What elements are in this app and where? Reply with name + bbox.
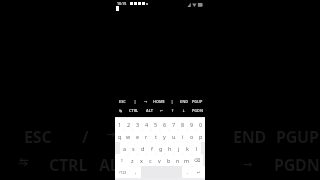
button[interactable]: m bbox=[182, 154, 191, 166]
button[interactable]: c bbox=[146, 154, 155, 166]
button[interactable]: / bbox=[82, 126, 89, 148]
button[interactable]: ALT bbox=[99, 154, 128, 176]
staticText: CTRL bbox=[129, 108, 139, 113]
button[interactable]: r bbox=[142, 130, 151, 142]
button[interactable]: ↑ bbox=[167, 105, 178, 115]
staticText: v bbox=[158, 157, 161, 164]
staticText: j bbox=[178, 145, 180, 152]
button[interactable]: PGUP bbox=[190, 96, 205, 106]
button[interactable]: y bbox=[160, 130, 169, 142]
button[interactable]: HOME bbox=[151, 96, 167, 106]
staticText: b bbox=[167, 157, 171, 164]
staticText: PGUP bbox=[192, 99, 203, 104]
button[interactable]: p bbox=[196, 130, 205, 142]
staticText: n bbox=[176, 157, 180, 164]
button[interactable]: a bbox=[120, 142, 129, 154]
staticText: ESC bbox=[119, 99, 126, 104]
staticText: ↓ bbox=[182, 108, 186, 112]
button[interactable]: . bbox=[182, 166, 193, 178]
button[interactable]: v bbox=[155, 154, 164, 166]
button[interactable]: 6 bbox=[160, 118, 169, 130]
staticText: q bbox=[118, 133, 122, 140]
staticText: / bbox=[82, 126, 89, 148]
staticText: END bbox=[233, 126, 267, 148]
button[interactable]: n bbox=[173, 154, 182, 166]
button[interactable]: ↓ bbox=[178, 105, 189, 115]
button[interactable]: j bbox=[174, 142, 183, 154]
staticText: | bbox=[171, 99, 174, 104]
staticText: PGDN bbox=[192, 108, 203, 113]
button[interactable]: Enter bbox=[193, 166, 205, 178]
button[interactable]: g bbox=[156, 142, 165, 154]
button[interactable]: o bbox=[187, 130, 196, 142]
button[interactable]: l bbox=[192, 142, 201, 154]
button[interactable]: , bbox=[130, 166, 141, 178]
button[interactable]: b bbox=[164, 154, 173, 166]
button[interactable]: s bbox=[129, 142, 138, 154]
button[interactable]: Backspace bbox=[191, 154, 203, 166]
button[interactable]: w bbox=[124, 130, 133, 142]
button[interactable]: 2 bbox=[124, 118, 133, 130]
button[interactable]: ALT bbox=[142, 105, 156, 115]
button[interactable]: | bbox=[167, 96, 177, 106]
button[interactable]: | bbox=[130, 96, 140, 106]
staticText: . bbox=[187, 169, 189, 175]
button[interactable]: → bbox=[106, 128, 116, 141]
staticText: ← bbox=[160, 108, 164, 112]
button[interactable]: ?123 bbox=[115, 166, 130, 178]
button[interactable]: f bbox=[147, 142, 156, 154]
staticText: 6 bbox=[163, 121, 167, 128]
button[interactable]: 0 bbox=[196, 118, 205, 130]
staticText: , bbox=[135, 169, 137, 175]
button[interactable]: 1 bbox=[115, 118, 124, 130]
button[interactable]: 3 bbox=[133, 118, 142, 130]
button[interactable]: CTRL bbox=[126, 105, 142, 115]
staticText: 1 bbox=[118, 121, 122, 128]
button[interactable]: 5 bbox=[151, 118, 160, 130]
button[interactable]: 9 bbox=[187, 118, 196, 130]
button[interactable]: i bbox=[178, 130, 187, 142]
button[interactable]: t bbox=[151, 130, 160, 142]
button[interactable]: PGDN bbox=[274, 154, 320, 176]
button[interactable]: e bbox=[133, 130, 142, 142]
button[interactable]: ESC bbox=[115, 96, 130, 106]
button[interactable]: PGUP bbox=[276, 126, 319, 148]
staticText: p bbox=[199, 133, 203, 140]
staticText: 7 bbox=[172, 121, 176, 128]
staticText: END bbox=[180, 99, 188, 104]
button[interactable]: → bbox=[140, 96, 151, 106]
button[interactable]: Shift bbox=[115, 154, 128, 166]
button[interactable]: END bbox=[177, 96, 190, 106]
button[interactable]: Tab bbox=[19, 158, 28, 166]
staticText: 2 bbox=[127, 121, 131, 128]
button[interactable]: q bbox=[115, 130, 124, 142]
button[interactable]: z bbox=[128, 154, 137, 166]
button[interactable]: 8 bbox=[178, 118, 187, 130]
button[interactable]: x bbox=[137, 154, 146, 166]
button[interactable]: ← bbox=[156, 105, 167, 115]
button[interactable]: PGDN bbox=[189, 105, 205, 115]
button[interactable]: ESC bbox=[24, 126, 52, 148]
button[interactable]: 4 bbox=[142, 118, 151, 130]
staticText: i bbox=[182, 133, 184, 140]
button[interactable]: u bbox=[169, 130, 178, 142]
button[interactable]: k bbox=[183, 142, 192, 154]
staticText: z bbox=[131, 157, 134, 164]
staticText: ⇧ bbox=[120, 158, 124, 163]
staticText: → bbox=[144, 99, 148, 103]
button[interactable]: d bbox=[138, 142, 147, 154]
button[interactable]: h bbox=[165, 142, 174, 154]
other: Signal, Wi-Fi and battery bbox=[187, 2, 203, 8]
staticText: a bbox=[123, 145, 127, 152]
button[interactable]: ↹ bbox=[115, 105, 126, 115]
button[interactable]: 7 bbox=[169, 118, 178, 130]
button[interactable]: CTRL bbox=[49, 154, 88, 176]
staticText: CTRL bbox=[49, 154, 88, 176]
staticText: → bbox=[106, 128, 116, 141]
button[interactable]: END bbox=[233, 126, 267, 148]
staticText: ↹ bbox=[119, 108, 123, 112]
staticText: PGDN bbox=[274, 154, 320, 176]
button[interactable]: → bbox=[243, 158, 253, 171]
staticText: h bbox=[168, 145, 172, 152]
